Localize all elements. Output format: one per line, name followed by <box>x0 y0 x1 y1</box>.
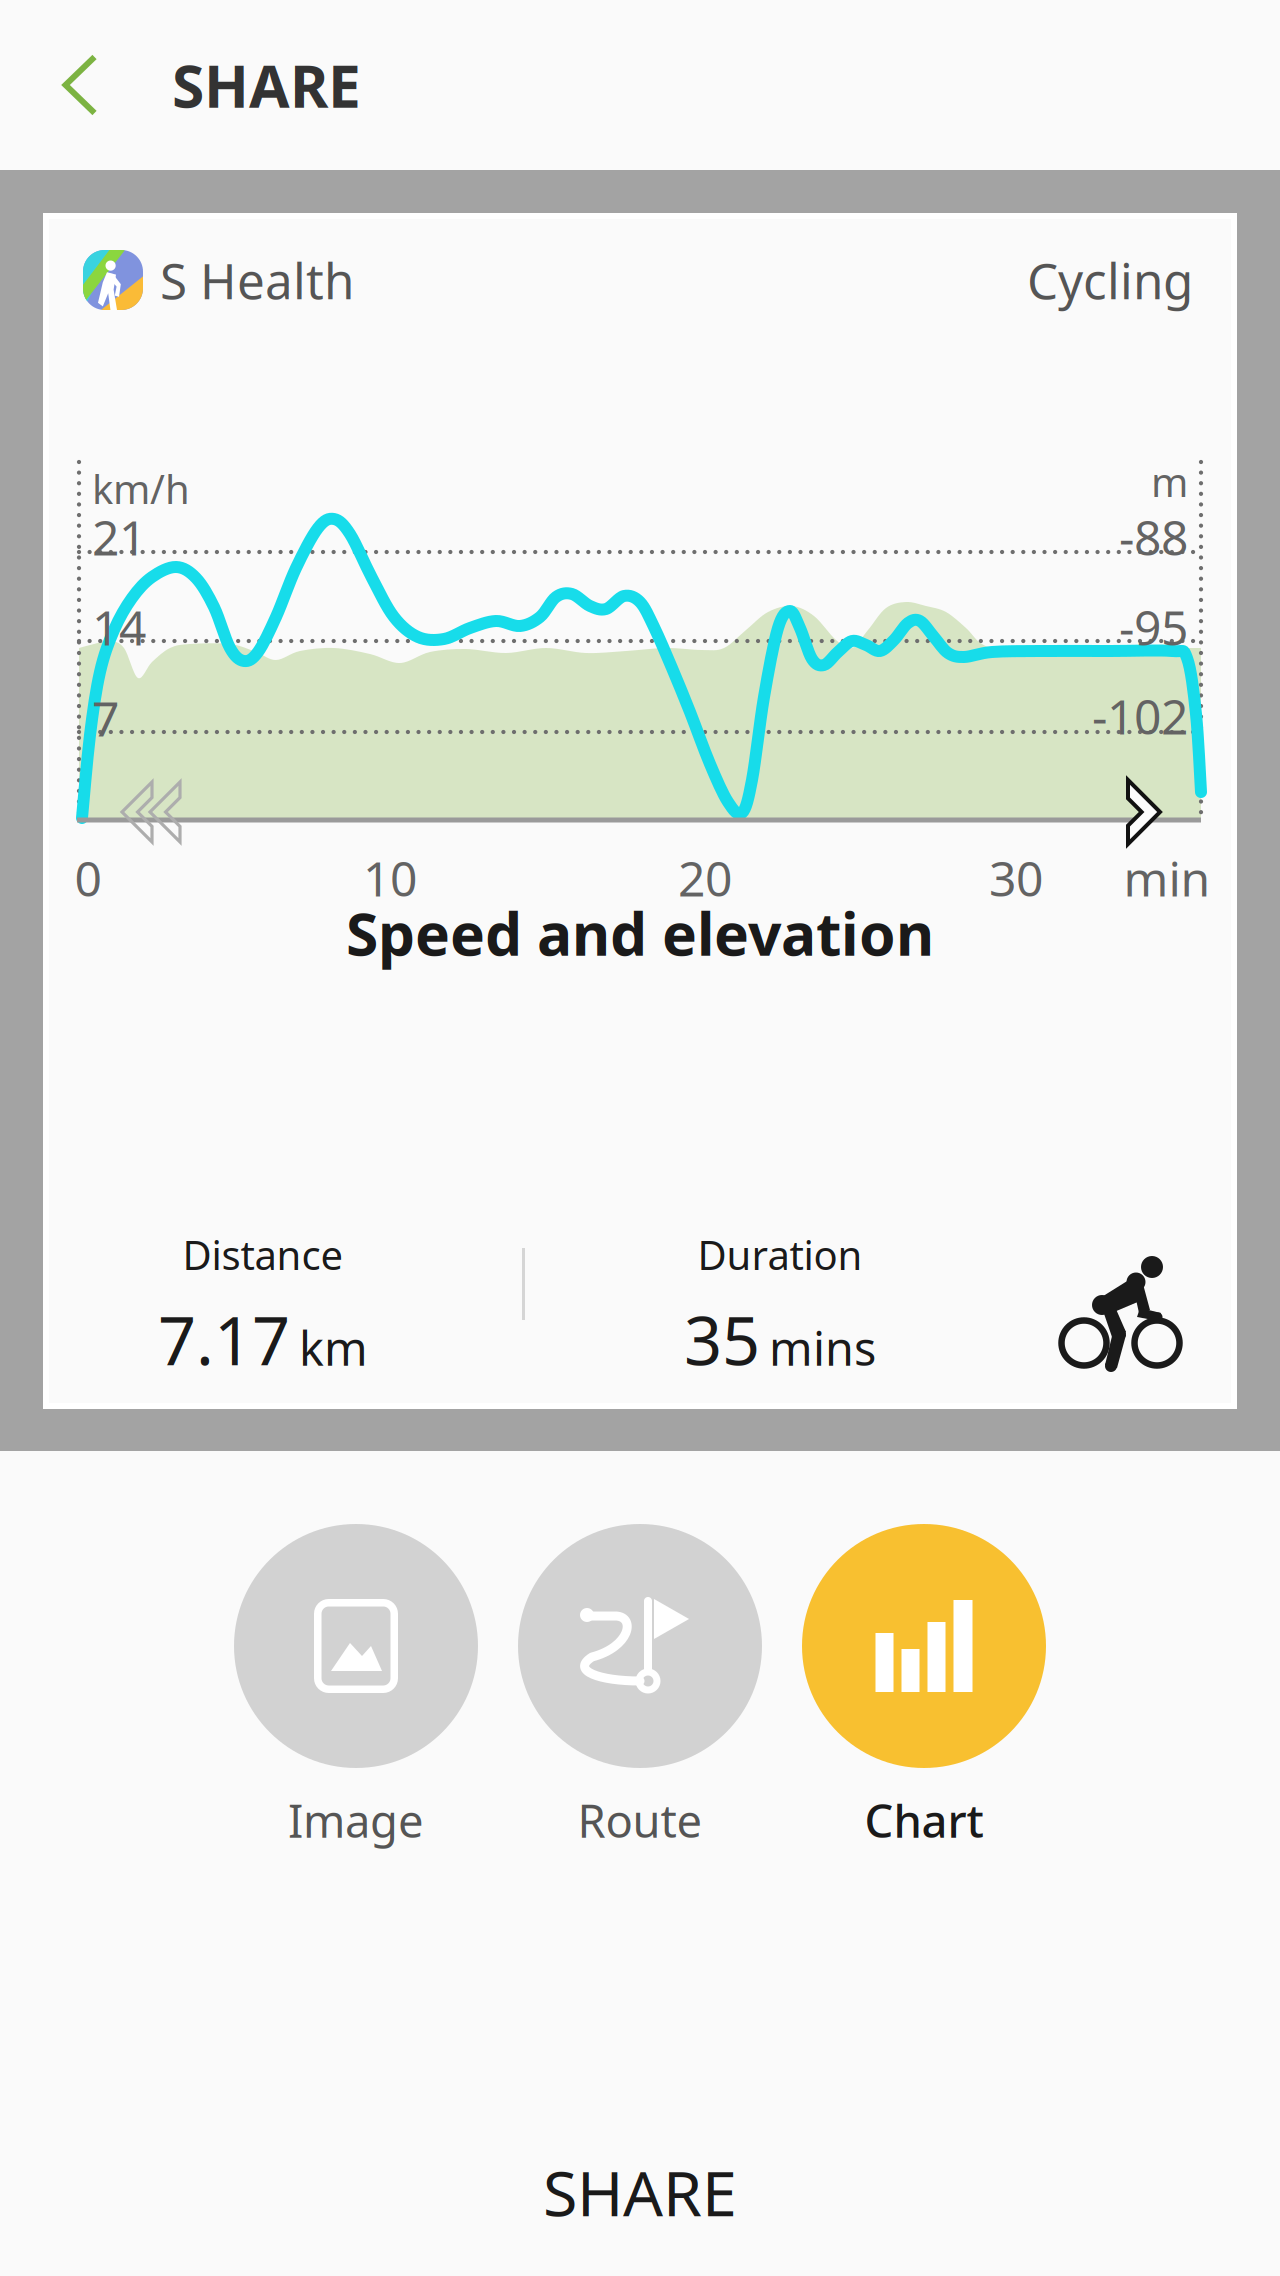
staticText: min <box>1123 846 1210 910</box>
button[interactable]: Image <box>214 1524 498 1850</box>
staticText: Image <box>288 1790 424 1850</box>
button[interactable]: Route <box>498 1524 782 1850</box>
staticText: Route <box>577 1790 702 1850</box>
staticText: 10 <box>363 846 417 910</box>
staticText: 0 <box>74 846 101 910</box>
button[interactable]: Back <box>20 0 140 170</box>
staticText: S Health <box>160 247 354 313</box>
staticText: Distance <box>182 1228 343 1281</box>
staticText: -102 <box>1092 684 1188 748</box>
staticText: 14 <box>92 595 146 659</box>
staticText: 7 <box>92 686 119 750</box>
staticText: mins <box>769 1317 876 1379</box>
staticText: -88 <box>1119 505 1188 569</box>
staticText: 7.17 <box>158 1295 290 1384</box>
staticText: 30 <box>989 846 1043 910</box>
staticText: SHARE <box>172 46 361 124</box>
staticText: km/h <box>92 462 190 515</box>
staticText: -95 <box>1119 595 1188 659</box>
staticText: 35 <box>684 1295 760 1384</box>
staticText: Cycling <box>1027 247 1193 313</box>
staticText: m <box>1151 455 1188 508</box>
staticText: Speed and elevation <box>346 894 934 972</box>
staticText: Duration <box>697 1228 862 1281</box>
staticText: 21 <box>92 505 146 569</box>
staticText: km <box>299 1317 368 1379</box>
button[interactable]: SHARE <box>0 2112 1280 2272</box>
staticText: Chart <box>864 1790 983 1850</box>
button[interactable]: Chart <box>782 1524 1066 1850</box>
staticText: SHARE <box>543 2150 737 2234</box>
staticText: 20 <box>678 846 732 910</box>
